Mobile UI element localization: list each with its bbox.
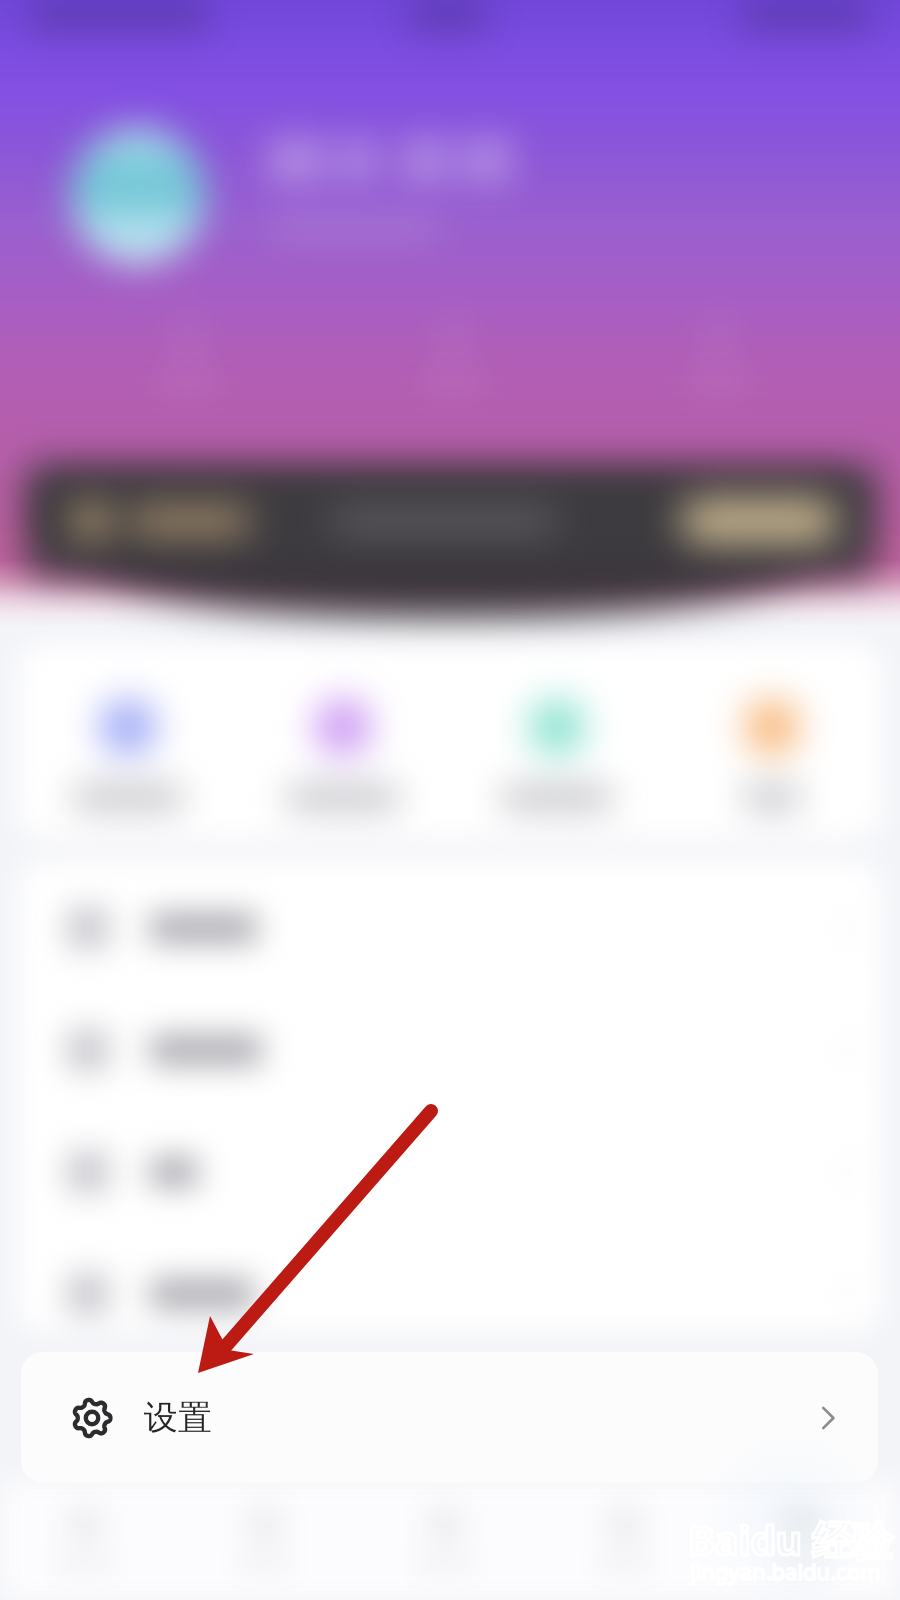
button[interactable]: 地址管理 — [18, 992, 882, 1108]
button[interactable]: 设置 — [21, 1352, 878, 1483]
button[interactable]: 我的消息 — [18, 870, 882, 986]
staticText: jingyan.baidu.com — [690, 1556, 881, 1586]
button[interactable]: 我的收藏 — [273, 698, 413, 808]
button[interactable]: 帮助 — [18, 1114, 882, 1230]
button[interactable]: 我的优惠 — [487, 698, 627, 808]
button[interactable]: 我的订单 — [58, 698, 198, 808]
button[interactable]: 钱包 — [702, 698, 842, 808]
button[interactable]: 关于我们 — [18, 1236, 882, 1352]
staticText: 设置 — [144, 1396, 212, 1439]
button[interactable]: 我的 — [720, 1480, 890, 1600]
staticText: Baidu 经验 — [688, 1512, 893, 1567]
